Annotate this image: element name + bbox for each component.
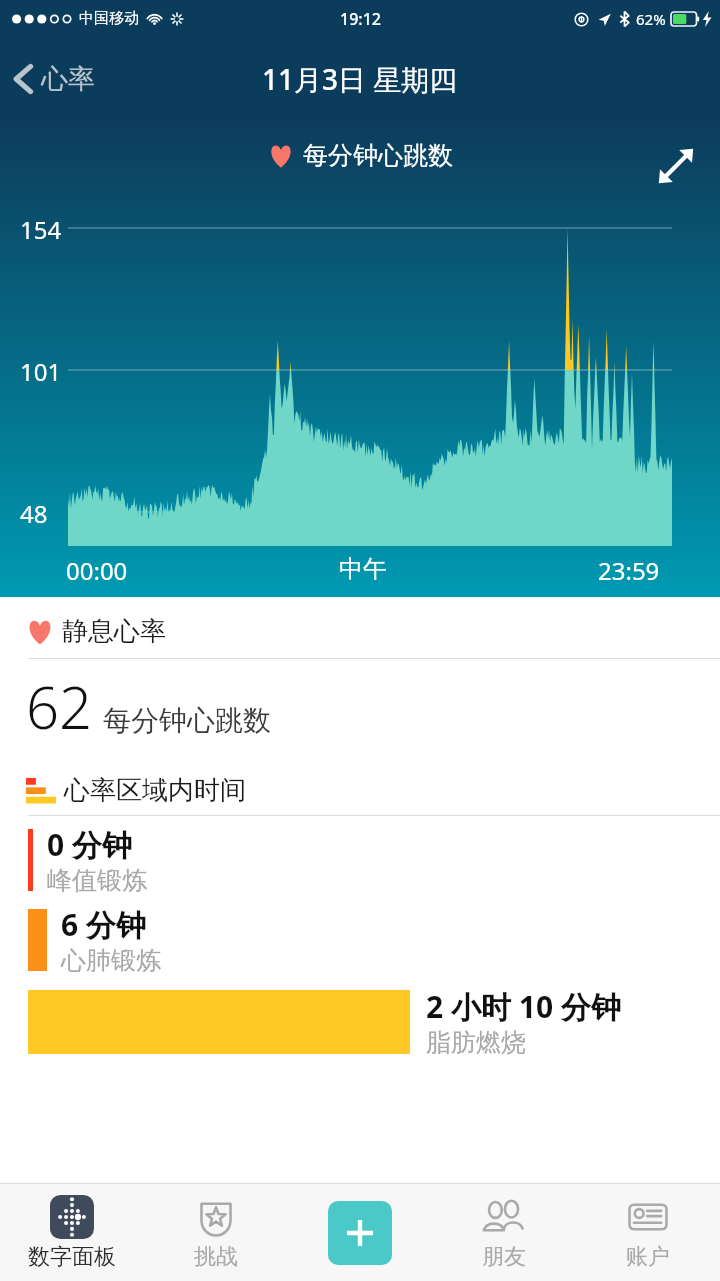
button[interactable]: 静息心率 — [0, 615, 720, 746]
staticText: 19:12 — [340, 8, 381, 30]
staticText: 峰值锻炼 — [47, 865, 147, 896]
staticText: 静息心率 — [62, 615, 166, 648]
button[interactable]: 挑战 — [144, 1184, 288, 1281]
staticText: 0 分钟 — [47, 824, 132, 865]
staticText: 朋友 — [482, 1243, 526, 1271]
staticText: 2 小时 10 分钟 — [426, 986, 621, 1027]
button[interactable]: 2 小时 10 分钟 — [0, 986, 720, 1058]
staticText: 脂肪燃烧 — [426, 1027, 526, 1058]
staticText: 挑战 — [194, 1243, 238, 1271]
button[interactable]: 朋友 — [432, 1184, 576, 1281]
staticText: 62% — [636, 9, 666, 29]
staticText: 00:00 — [66, 554, 128, 587]
staticText: 心率区域内时间 — [64, 774, 246, 807]
staticText: 62 — [26, 667, 93, 746]
staticText: 数字面板 — [28, 1243, 116, 1271]
staticText: 6 分钟 — [61, 904, 146, 945]
staticText: 中国移动 — [79, 9, 139, 28]
staticText: 23:59 — [598, 554, 660, 587]
staticText: 账户 — [626, 1243, 670, 1271]
button[interactable]: 账户 — [576, 1184, 720, 1281]
staticText: 48 — [20, 497, 48, 530]
button[interactable]: 6 分钟 — [0, 896, 720, 976]
staticText: 每分钟心跳数 — [103, 703, 271, 738]
button[interactable]: 0 分钟 — [0, 816, 720, 896]
staticText: 154 — [20, 213, 62, 246]
staticText: 心肺锻炼 — [61, 945, 161, 976]
staticText: 心率 — [41, 62, 95, 96]
staticText: 11月3日 星期四 — [262, 60, 458, 98]
staticText: 中午 — [339, 554, 387, 584]
staticText: 101 — [20, 355, 62, 388]
button[interactable]: Expand chart — [648, 138, 704, 194]
staticText: 每分钟心跳数 — [303, 140, 453, 171]
button[interactable]: 心率 — [0, 56, 107, 102]
button[interactable]: 数字面板 — [0, 1184, 144, 1281]
button[interactable]: Add — [328, 1201, 392, 1265]
